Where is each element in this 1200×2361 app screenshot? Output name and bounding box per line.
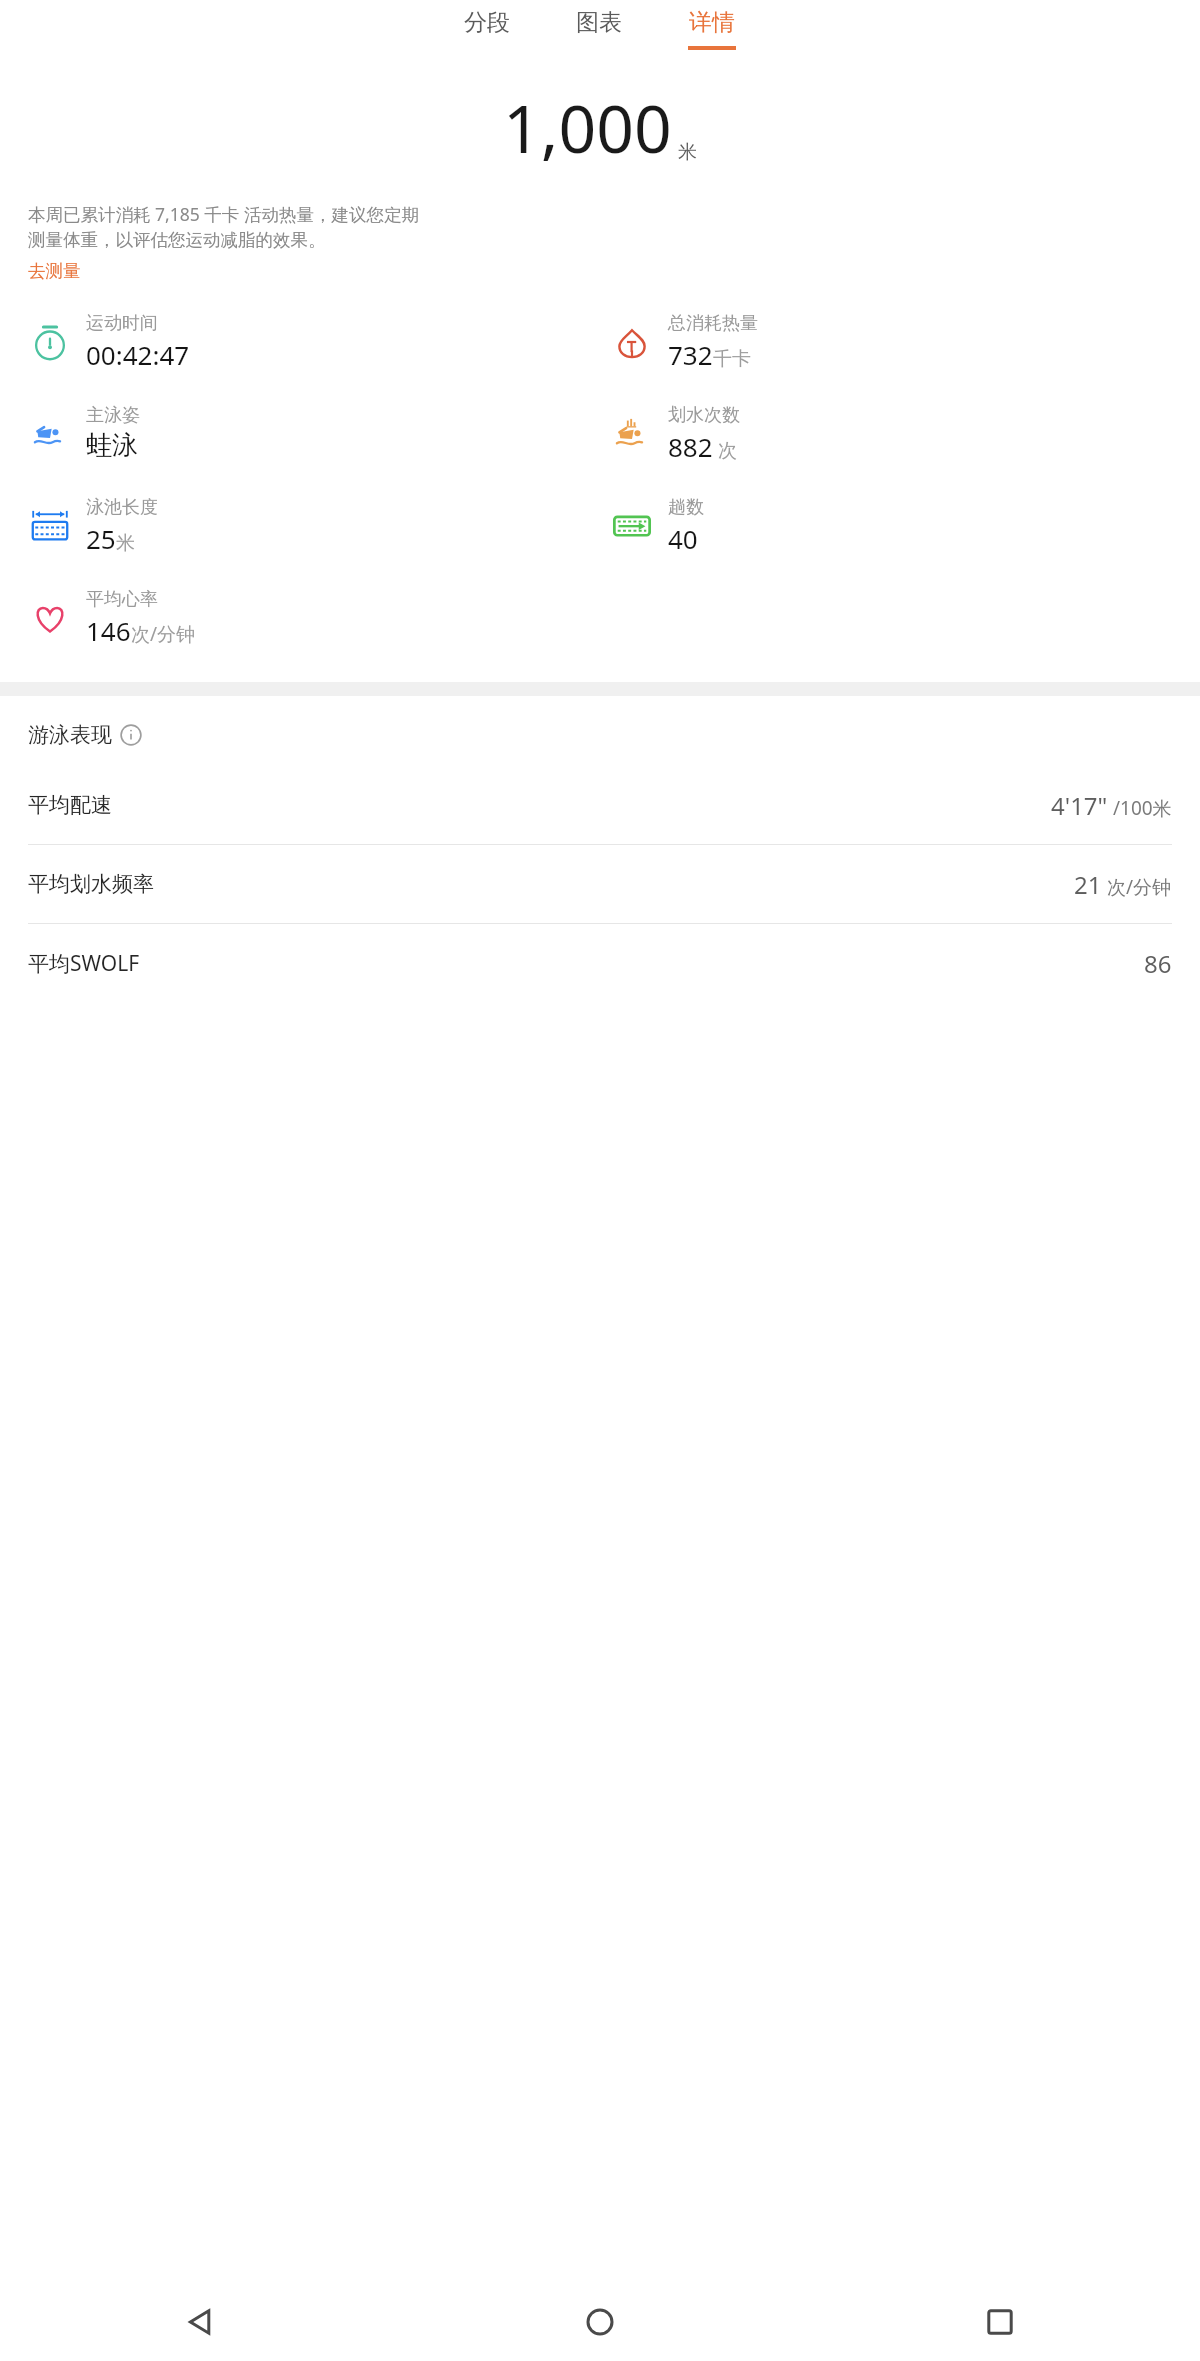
- staticText: 米: [678, 140, 697, 164]
- staticText: 千卡: [713, 347, 751, 371]
- staticText: 00:42:47: [86, 337, 190, 372]
- staticText: 86: [1144, 947, 1172, 980]
- staticText: 米: [116, 531, 135, 555]
- staticText: /100米: [1108, 795, 1172, 821]
- button[interactable]: Back: [0, 2283, 400, 2361]
- button[interactable]: 说明: [120, 724, 142, 746]
- staticText: 882: [668, 429, 713, 464]
- staticText: 146: [86, 613, 131, 648]
- staticText: 游泳表现: [28, 722, 112, 748]
- staticText: 平均心率: [86, 588, 158, 611]
- staticText: 次/分钟: [1102, 874, 1172, 900]
- button[interactable]: 平均SWOLF: [0, 923, 1200, 1002]
- button[interactable]: 平均配速: [0, 766, 1200, 844]
- staticText: 主泳姿: [86, 404, 140, 427]
- staticText: 图表: [576, 8, 622, 37]
- staticText: 划水次数: [668, 404, 740, 427]
- staticText: 运动时间: [86, 312, 158, 335]
- staticText: 平均SWOLF: [28, 949, 140, 978]
- staticText: 趟数: [668, 496, 704, 519]
- staticText: 次: [713, 437, 737, 463]
- staticText: 去测量: [28, 260, 81, 282]
- button[interactable]: 详情: [676, 0, 748, 58]
- button[interactable]: 图表: [564, 0, 634, 54]
- staticText: 732: [668, 337, 713, 372]
- staticText: 平均配速: [28, 792, 112, 818]
- staticText: 本周已累计消耗 7,185 千卡 活动热量，建议您定期 测量体重，以评估您运动减…: [28, 202, 419, 252]
- button[interactable]: 去测量: [28, 258, 81, 284]
- staticText: 21: [1074, 868, 1102, 901]
- staticText: 详情: [689, 8, 735, 37]
- staticText: 分段: [464, 8, 510, 37]
- staticText: 4'17": [1051, 789, 1108, 822]
- staticText: 1,000: [503, 82, 672, 172]
- staticText: 平均划水频率: [28, 871, 154, 897]
- staticText: 次/分钟: [131, 621, 196, 647]
- staticText: 蛙泳: [86, 429, 138, 462]
- staticText: 25: [86, 521, 116, 556]
- button[interactable]: 平均划水频率: [0, 844, 1200, 923]
- button[interactable]: Recents: [800, 2283, 1200, 2361]
- staticText: 总消耗热量: [668, 312, 758, 335]
- staticText: 40: [668, 521, 698, 556]
- staticText: 泳池长度: [86, 496, 158, 519]
- button[interactable]: Home: [400, 2283, 800, 2361]
- button[interactable]: 分段: [452, 0, 522, 54]
